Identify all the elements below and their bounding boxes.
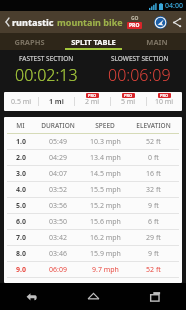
staticText: runtastic — [12, 16, 54, 28]
staticText: 15.5 mph — [90, 185, 121, 195]
staticText: GO — [131, 15, 139, 22]
staticText: 00:02:13 — [15, 64, 78, 86]
button[interactable]: 0.5 mi — [4, 92, 38, 111]
staticText: 6 ft — [148, 217, 159, 227]
staticText: 04:07 — [49, 169, 67, 179]
staticText: 8.0 — [16, 249, 26, 259]
button[interactable]: 7.0 — [4, 230, 182, 245]
button[interactable]: 6.0 — [4, 214, 182, 229]
button[interactable]: GRAPHS — [0, 33, 58, 50]
button[interactable]: 2.0 — [4, 150, 182, 165]
staticText: 04:00 — [165, 1, 183, 11]
button[interactable]: SPLIT TABLE — [58, 33, 128, 50]
staticText: PRO — [160, 93, 169, 98]
button[interactable]: Map — [151, 13, 169, 31]
staticText: 52 ft — [146, 265, 161, 275]
staticText: 9.7 mph — [92, 265, 119, 275]
staticText: MAIN — [146, 37, 168, 47]
button[interactable]: 1 mi — [39, 92, 74, 111]
staticText: 3.0 — [16, 169, 26, 179]
staticText: 15.6 mph — [90, 217, 121, 227]
staticText: FASTEST SECTION — [19, 54, 74, 63]
staticText: PRO — [88, 93, 97, 98]
button[interactable]: MAIN — [128, 33, 186, 50]
button[interactable]: 1.0 — [4, 134, 182, 149]
button[interactable]: Recents — [124, 283, 186, 310]
staticText: MI — [16, 121, 25, 130]
staticText: 00:06:09 — [108, 64, 171, 86]
staticText: GRAPHS — [14, 37, 45, 47]
staticText: 2.0 — [16, 153, 26, 163]
button[interactable]: Back — [0, 283, 62, 310]
button[interactable]: 10 mi — [147, 92, 182, 111]
staticText: 5.0 — [16, 201, 26, 211]
button[interactable]: Share — [172, 13, 182, 31]
staticText: 15.2 mph — [90, 201, 121, 211]
staticText: 14.5 mph — [90, 169, 121, 179]
staticText: PRO — [124, 93, 133, 98]
staticText: 06:09 — [49, 265, 67, 275]
staticText: DURATION — [41, 121, 75, 130]
staticText: 03:56 — [49, 201, 67, 211]
staticText: SLOWEST SECTION — [111, 54, 169, 63]
staticText: 10 mi — [155, 97, 174, 107]
button[interactable]: 3.0 — [4, 166, 182, 181]
staticText: 03:46 — [49, 249, 67, 259]
staticText: 0.5 mi — [11, 97, 32, 107]
staticText: 9.0 — [16, 265, 26, 275]
button[interactable]: 5.0 — [4, 198, 182, 213]
staticText: 05:49 — [49, 137, 67, 147]
staticText: PRO — [129, 22, 140, 29]
staticText: SPLIT TABLE — [71, 37, 116, 47]
staticText: 1 mi — [49, 97, 64, 107]
button[interactable]: 5 mi — [111, 92, 146, 111]
staticText: SPEED — [95, 121, 115, 130]
staticText: 16.2 mph — [90, 233, 121, 243]
staticText: 15.9 mph — [90, 249, 121, 259]
staticText: 10.3 mph — [90, 137, 121, 147]
button[interactable]: 9.0 — [4, 262, 182, 277]
staticText: 16 ft — [146, 169, 161, 179]
button[interactable]: Home — [62, 283, 124, 310]
staticText: 04:29 — [49, 153, 67, 163]
staticText: 52 ft — [146, 137, 161, 147]
button[interactable]: runtastic — [4, 16, 124, 28]
staticText: mountain bike — [57, 16, 123, 28]
staticText: 32 ft — [146, 185, 161, 195]
staticText: ELEVATION — [136, 121, 171, 130]
staticText: 5 mi — [121, 97, 136, 107]
staticText: 6.0 — [16, 217, 26, 227]
button[interactable]: 8.0 — [4, 246, 182, 261]
staticText: 7.0 — [16, 233, 26, 243]
staticText: 4.0 — [16, 185, 26, 195]
button[interactable]: 2 mi — [75, 92, 110, 111]
button[interactable]: Go Pro — [124, 15, 145, 29]
button[interactable]: 4.0 — [4, 182, 182, 197]
staticText: 29 ft — [146, 233, 161, 243]
staticText: 13.4 mph — [90, 153, 121, 163]
staticText: 03:50 — [49, 217, 67, 227]
staticText: 9 ft — [148, 201, 159, 211]
staticText: 1.0 — [16, 137, 26, 147]
staticText: 03:42 — [49, 233, 67, 243]
staticText: 2 mi — [85, 97, 100, 107]
staticText: 03:52 — [49, 185, 67, 195]
staticText: 0 ft — [148, 153, 159, 163]
staticText: 9 ft — [148, 249, 159, 259]
